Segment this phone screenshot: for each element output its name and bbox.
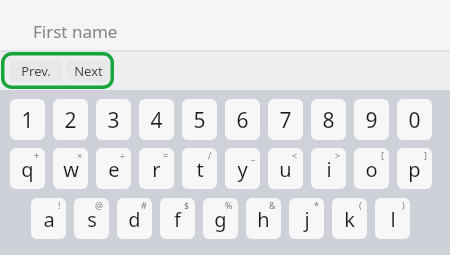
staticText: j (304, 206, 310, 233)
other: Accessibility focus highlight (1, 52, 114, 89)
button[interactable]: u (268, 148, 303, 189)
staticText: d (128, 206, 141, 233)
staticText: p (408, 156, 421, 183)
staticText: i (326, 156, 332, 183)
staticText: * (314, 199, 319, 211)
staticText: Prev. (21, 62, 51, 80)
staticText: 9 (365, 106, 378, 135)
staticText: × (77, 149, 83, 161)
staticText: [ (381, 149, 384, 161)
staticText: ] (424, 149, 427, 161)
button[interactable]: j (289, 198, 324, 239)
button[interactable]: l (375, 198, 410, 239)
staticText: t (196, 156, 204, 183)
staticText: ) (402, 199, 405, 211)
button[interactable]: 5 (182, 99, 217, 140)
button[interactable]: g (203, 198, 238, 239)
staticText: 5 (193, 106, 206, 135)
button[interactable]: i (311, 148, 346, 189)
staticText: e (108, 156, 120, 183)
staticText: l (390, 206, 396, 233)
staticText: First name (33, 20, 118, 43)
staticText: k (344, 206, 355, 233)
staticText: q (21, 156, 34, 183)
staticText: 6 (236, 106, 249, 135)
button[interactable]: 3 (96, 99, 131, 140)
button[interactable]: w (53, 148, 88, 189)
button[interactable]: k (332, 198, 367, 239)
staticText: $ (184, 199, 190, 211)
staticText: _ (251, 149, 255, 161)
staticText: ÷ (120, 149, 126, 161)
button[interactable]: 6 (225, 99, 260, 140)
staticText: a (43, 206, 55, 233)
staticText: f (174, 206, 181, 233)
staticText: r (152, 156, 161, 183)
button[interactable]: s (74, 198, 109, 239)
button[interactable]: q (10, 148, 45, 189)
staticText: 4 (150, 106, 163, 135)
staticText: / (208, 149, 212, 161)
button[interactable]: 2 (53, 99, 88, 140)
staticText: h (257, 206, 270, 233)
button[interactable]: f (160, 198, 195, 239)
button[interactable]: First name (0, 0, 450, 50)
staticText: 7 (279, 106, 292, 135)
staticText: > (335, 149, 341, 161)
button[interactable]: Prev. (10, 60, 62, 82)
button[interactable]: 8 (311, 99, 346, 140)
staticText: 3 (107, 106, 120, 135)
button[interactable]: t (182, 148, 217, 189)
staticText: = (163, 149, 169, 161)
button[interactable]: 1 (10, 99, 45, 140)
staticText: & (269, 199, 276, 211)
staticText: u (279, 156, 292, 183)
staticText: ! (58, 199, 61, 211)
staticText: < (292, 149, 298, 161)
staticText: # (141, 199, 147, 211)
staticText: 2 (64, 106, 77, 135)
button[interactable]: d (117, 198, 152, 239)
button[interactable]: 0 (397, 99, 432, 140)
button[interactable]: a (31, 198, 66, 239)
button[interactable]: e (96, 148, 131, 189)
button[interactable]: r (139, 148, 174, 189)
staticText: g (214, 206, 227, 233)
staticText: w (63, 156, 79, 183)
staticText: 8 (322, 106, 335, 135)
staticText: o (365, 156, 378, 183)
button[interactable]: y (225, 148, 260, 189)
button[interactable]: 7 (268, 99, 303, 140)
staticText: s (87, 206, 97, 233)
staticText: Next (74, 62, 103, 80)
button[interactable]: Next (67, 60, 110, 82)
button[interactable]: h (246, 198, 281, 239)
staticText: + (34, 149, 40, 161)
button[interactable]: 4 (139, 99, 174, 140)
staticText: 1 (21, 106, 34, 135)
button[interactable]: p (397, 148, 432, 189)
button[interactable]: o (354, 148, 389, 189)
button[interactable]: 9 (354, 99, 389, 140)
staticText: ( (359, 199, 362, 211)
staticText: 0 (408, 106, 421, 135)
staticText: @ (95, 199, 104, 211)
staticText: y (237, 156, 248, 183)
staticText: % (225, 199, 233, 211)
